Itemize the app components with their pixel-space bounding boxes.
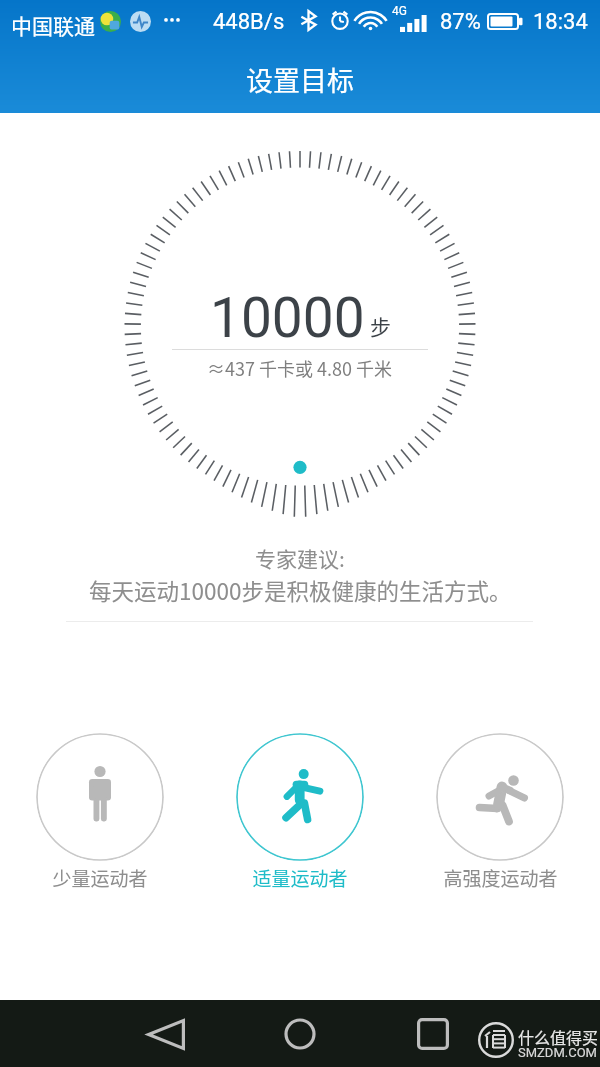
button[interactable]: Home <box>270 1004 330 1064</box>
staticText: SMZDM.COM <box>518 1045 597 1060</box>
button[interactable]: Recent apps <box>403 1004 463 1064</box>
staticText: 每天运动10000步是积极健康的生活方式。 <box>89 574 512 607</box>
button[interactable]: 少量运动者 <box>36 733 164 892</box>
staticText: 中国联通 <box>11 10 95 40</box>
staticText: 设置目标 <box>246 60 354 99</box>
staticText: 4G <box>392 4 407 18</box>
button[interactable]: 适量运动者 <box>236 733 364 892</box>
staticText: 什么值得买 <box>518 1025 599 1048</box>
staticText: 87% <box>440 9 481 35</box>
staticText: 高强度运动者 <box>443 864 558 892</box>
button[interactable]: Back <box>136 1004 196 1064</box>
staticText: 少量运动者 <box>52 864 148 892</box>
button[interactable]: 高强度运动者 <box>436 733 564 892</box>
staticText: ≈437 千卡或 4.80 千米 <box>207 355 393 381</box>
staticText: 10000 <box>210 286 365 350</box>
staticText: 18:34 <box>533 9 588 35</box>
staticText: 专家建议: <box>255 543 345 573</box>
staticText: 步 <box>370 311 391 341</box>
staticText: 448B/s <box>213 9 285 35</box>
staticText: 适量运动者 <box>252 864 348 892</box>
